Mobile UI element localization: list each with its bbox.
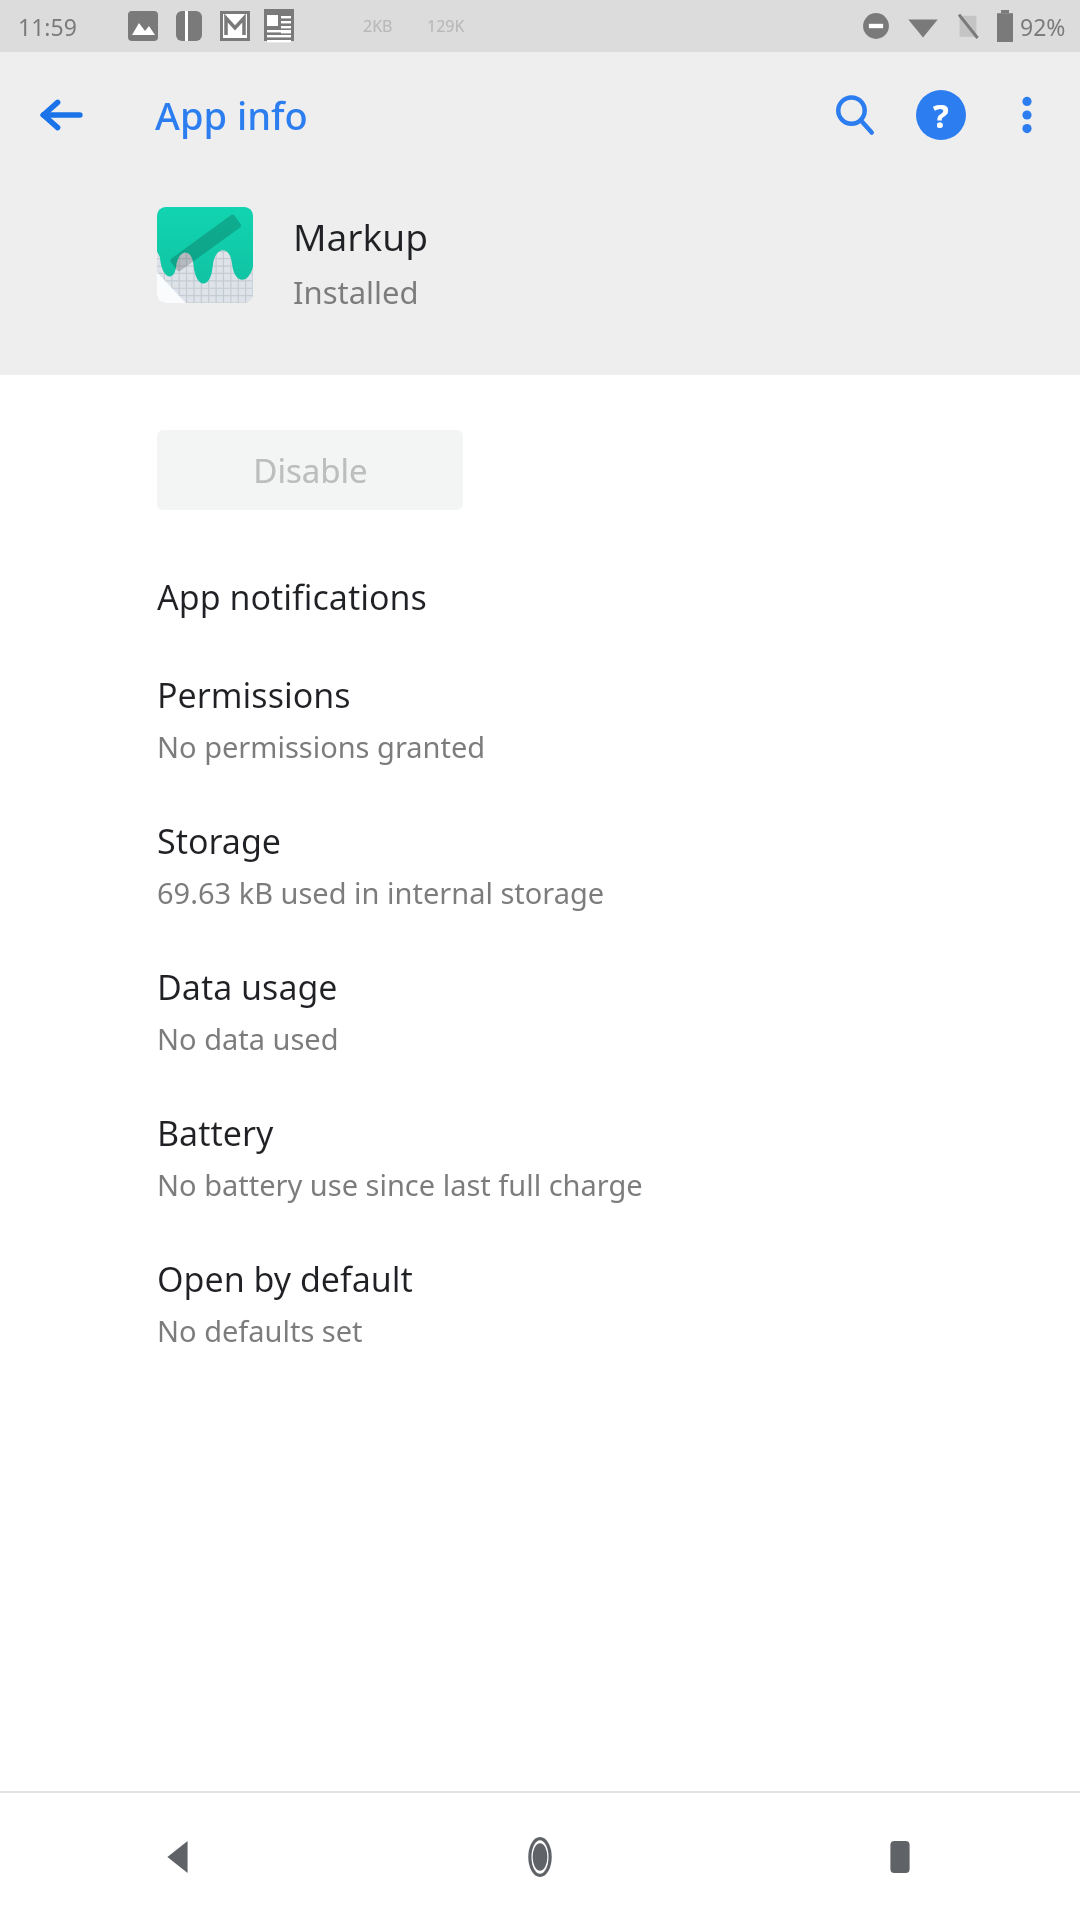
button[interactable]: Recent apps xyxy=(720,1793,1080,1920)
button[interactable]: Home xyxy=(360,1793,720,1920)
staticText: 2KB xyxy=(363,15,393,37)
button[interactable]: Search xyxy=(812,72,898,158)
staticText: Battery xyxy=(157,1110,274,1156)
staticText: Storage xyxy=(157,818,282,864)
button[interactable]: Open by default xyxy=(0,1230,1080,1376)
staticText: App notifications xyxy=(157,574,427,620)
staticText: 11:59 xyxy=(18,11,77,42)
staticText: Markup xyxy=(293,211,428,261)
button[interactable]: Help xyxy=(898,72,984,158)
button[interactable]: Data usage xyxy=(0,938,1080,1084)
button[interactable]: Battery xyxy=(0,1084,1080,1230)
button[interactable]: Storage xyxy=(0,792,1080,938)
staticText: Open by default xyxy=(157,1256,413,1302)
button[interactable]: Back xyxy=(22,76,100,154)
staticText: 69.63 kB used in internal storage xyxy=(157,873,605,912)
staticText: No defaults set xyxy=(157,1311,363,1350)
staticText: No data used xyxy=(157,1019,339,1058)
staticText: Installed xyxy=(293,271,419,313)
button[interactable]: Back xyxy=(0,1793,360,1920)
staticText: 129K xyxy=(427,15,465,37)
button[interactable]: App notifications xyxy=(0,548,1080,646)
staticText: App info xyxy=(155,89,308,141)
staticText: Data usage xyxy=(157,964,338,1010)
staticText: Permissions xyxy=(157,672,351,718)
button[interactable]: Permissions xyxy=(0,646,1080,792)
staticText: No battery use since last full charge xyxy=(157,1165,643,1204)
staticText: Disable xyxy=(253,448,368,493)
button[interactable]: Disable xyxy=(157,430,463,510)
staticText: No permissions granted xyxy=(157,727,486,766)
button[interactable]: More options xyxy=(984,72,1070,158)
staticText: ? xyxy=(933,93,949,138)
staticText: 92% xyxy=(1020,11,1066,42)
